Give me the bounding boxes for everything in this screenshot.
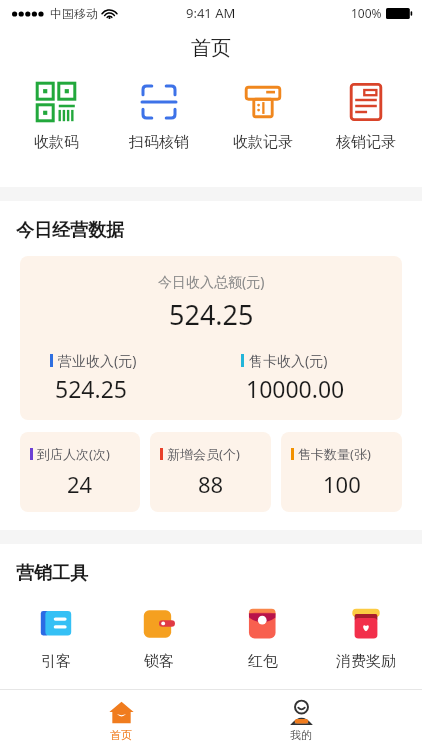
staticText: 88 xyxy=(198,469,224,499)
button[interactable]: 消费奖励 xyxy=(318,605,414,671)
staticText: 100% xyxy=(351,5,382,21)
button[interactable]: 我的 xyxy=(241,699,361,742)
staticText: 到店人次(次) xyxy=(37,445,110,463)
staticText: 100 xyxy=(323,469,361,499)
staticText: 我的 xyxy=(290,728,312,742)
button[interactable]: 新增会员(个) xyxy=(150,432,271,512)
staticText: 首页 xyxy=(110,728,132,742)
staticText: 首页 xyxy=(191,36,231,61)
staticText: 24 xyxy=(67,469,93,499)
staticText: 中国移动 xyxy=(50,6,98,21)
button[interactable]: 售卡收入(元) xyxy=(211,351,402,404)
staticText: 锁客 xyxy=(144,652,174,671)
staticText: 售卡收入(元) xyxy=(249,351,328,370)
staticText: 收款记录 xyxy=(233,133,293,152)
staticText: 引客 xyxy=(41,652,71,671)
staticText: 收款码 xyxy=(34,133,79,152)
staticText: 核销记录 xyxy=(336,133,396,152)
staticText: 今日收入总额(元) xyxy=(158,272,265,291)
button[interactable]: 扫码核销 xyxy=(111,82,207,152)
button[interactable]: 售卡数量(张) xyxy=(281,432,402,512)
button[interactable]: 锁客 xyxy=(111,605,207,671)
button[interactable]: 首页 xyxy=(61,699,181,742)
staticText: 今日经营数据 xyxy=(16,219,124,242)
staticText: 消费奖励 xyxy=(336,652,396,671)
staticText: 红包 xyxy=(248,652,278,671)
staticText: 524.25 xyxy=(169,296,254,333)
button[interactable]: 红包 xyxy=(215,605,311,671)
button[interactable]: 收款码 xyxy=(8,82,104,152)
button[interactable]: 今日收入总额(元) xyxy=(20,256,402,420)
staticText: 新增会员(个) xyxy=(167,445,240,463)
staticText: 售卡数量(张) xyxy=(298,445,371,463)
button[interactable]: 核销记录 xyxy=(318,82,414,152)
button[interactable]: 到店人次(次) xyxy=(20,432,140,512)
staticText: 扫码核销 xyxy=(129,133,189,152)
staticText: 9:41 AM xyxy=(186,4,236,22)
staticText: 营销工具 xyxy=(16,562,88,585)
button[interactable]: 收款记录 xyxy=(215,82,311,152)
staticText: 524.25 xyxy=(55,373,127,404)
button[interactable]: 营业收入(元) xyxy=(20,351,211,404)
staticText: 10000.00 xyxy=(246,373,345,404)
staticText: 营业收入(元) xyxy=(58,351,137,370)
button[interactable]: 引客 xyxy=(8,605,104,671)
